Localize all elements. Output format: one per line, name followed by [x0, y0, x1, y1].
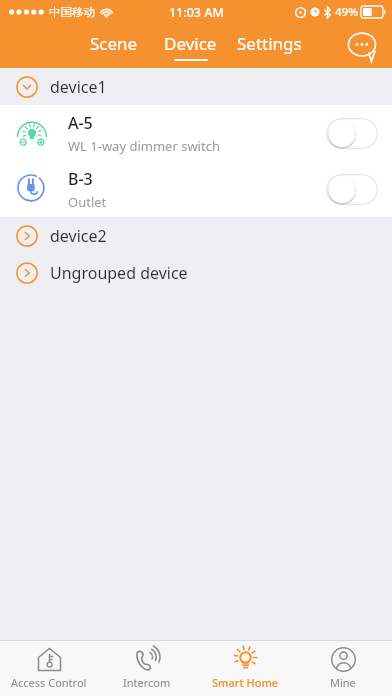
- button[interactable]: device2: [0, 217, 392, 254]
- button[interactable]: Power toggle: [326, 118, 378, 149]
- button[interactable]: device1: [0, 68, 392, 105]
- staticText: 11:03 AM: [169, 4, 224, 21]
- staticText: Smart Home: [212, 675, 279, 690]
- staticText: B-3: [68, 168, 93, 190]
- staticText: 中国移动: [49, 5, 95, 19]
- staticText: Access Control: [11, 675, 87, 690]
- staticText: 49%: [335, 4, 358, 20]
- button[interactable]: Power toggle: [326, 174, 378, 205]
- staticText: Ungrouped device: [50, 262, 188, 284]
- staticText: Mine: [330, 675, 356, 690]
- button[interactable]: Mine: [294, 641, 392, 696]
- staticText: Settings: [237, 32, 302, 55]
- button[interactable]: Access Control: [0, 641, 98, 696]
- staticText: Intercom: [123, 675, 171, 690]
- button[interactable]: B-3: [0, 161, 392, 217]
- button[interactable]: Intercom: [98, 641, 196, 696]
- button[interactable]: Scene: [86, 30, 142, 63]
- button[interactable]: Settings: [233, 30, 306, 63]
- button[interactable]: Device: [160, 30, 221, 63]
- button[interactable]: Ungrouped device: [0, 254, 392, 291]
- staticText: A-5: [68, 112, 93, 134]
- button[interactable]: A-5: [0, 105, 392, 161]
- staticText: device2: [50, 225, 107, 247]
- staticText: Outlet: [68, 193, 107, 211]
- staticText: device1: [50, 76, 107, 98]
- staticText: Device: [164, 32, 217, 55]
- button[interactable]: Smart Home: [196, 641, 294, 696]
- staticText: WL 1-way dimmer switch: [68, 137, 220, 155]
- button[interactable]: Messages: [342, 26, 382, 66]
- staticText: Scene: [90, 32, 138, 55]
